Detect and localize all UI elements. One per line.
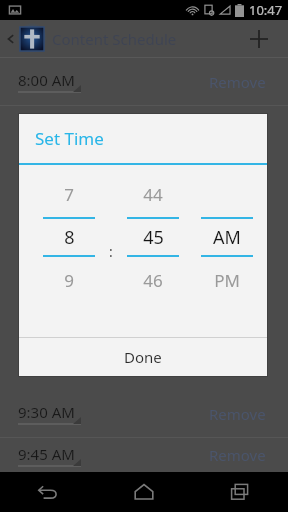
button[interactable]: Remove: [205, 400, 270, 428]
staticText: Done: [124, 347, 162, 367]
staticText: Remove: [209, 404, 266, 424]
staticText: 10:47: [249, 1, 283, 19]
staticText: Remove: [209, 445, 266, 465]
staticText: 9:30 AM: [18, 402, 75, 422]
staticText: 7: [64, 183, 74, 206]
button[interactable]: Home: [96, 472, 192, 512]
button[interactable]: Done: [19, 338, 267, 376]
staticText: 44: [143, 183, 163, 206]
staticText: 45: [143, 225, 164, 250]
button[interactable]: AM: [193, 165, 261, 337]
staticText: 8:00 AM: [18, 70, 75, 90]
staticText: Remove: [209, 72, 266, 92]
staticText: 9: [64, 269, 74, 292]
staticText: Content Schedule: [52, 29, 177, 49]
button[interactable]: Recent apps: [192, 472, 288, 512]
button[interactable]: 9:30 AM: [0, 390, 288, 437]
staticText: 9:45 AM: [18, 444, 75, 464]
staticText: 8: [64, 225, 75, 250]
button[interactable]: Remove: [205, 68, 270, 96]
staticText: PM: [214, 269, 240, 292]
button[interactable]: 7: [35, 165, 103, 337]
button[interactable]: Back: [0, 472, 96, 512]
button[interactable]: 9:45 AM: [0, 438, 288, 472]
staticText: 46: [143, 269, 163, 292]
staticText: AM: [213, 225, 241, 250]
button[interactable]: 8:00 AM: [0, 58, 288, 105]
button[interactable]: Navigate up: [4, 20, 18, 58]
button[interactable]: Remove: [205, 441, 270, 469]
staticText: :: [109, 242, 113, 261]
button[interactable]: 44: [119, 165, 187, 337]
staticText: Set Time: [35, 127, 104, 150]
button[interactable]: Add schedule: [240, 20, 278, 58]
